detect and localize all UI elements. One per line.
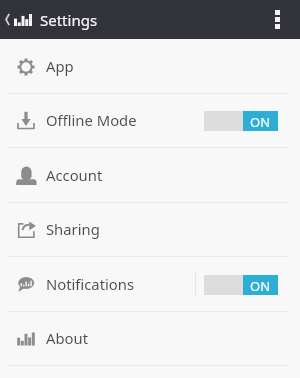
button[interactable]: About [0, 312, 300, 366]
staticText: Notifications [46, 274, 135, 294]
staticText: ON [250, 113, 271, 131]
button[interactable]: ON [204, 275, 278, 295]
button[interactable]: Back [0, 0, 14, 39]
staticText: Offline Mode [46, 110, 137, 130]
button[interactable]: ON [204, 111, 278, 131]
button[interactable]: Account [0, 148, 300, 203]
staticText: About [46, 328, 88, 348]
button[interactable]: App [0, 39, 300, 94]
staticText: App [46, 56, 74, 76]
button[interactable]: Notifications [0, 257, 300, 312]
button[interactable]: Offline Mode [0, 94, 300, 148]
staticText: Sharing [46, 219, 100, 239]
button[interactable]: Sharing [0, 203, 300, 257]
staticText: Account [46, 165, 103, 185]
staticText: Settings [40, 10, 98, 30]
staticText: ON [250, 277, 271, 295]
button[interactable]: More options [260, 0, 294, 39]
